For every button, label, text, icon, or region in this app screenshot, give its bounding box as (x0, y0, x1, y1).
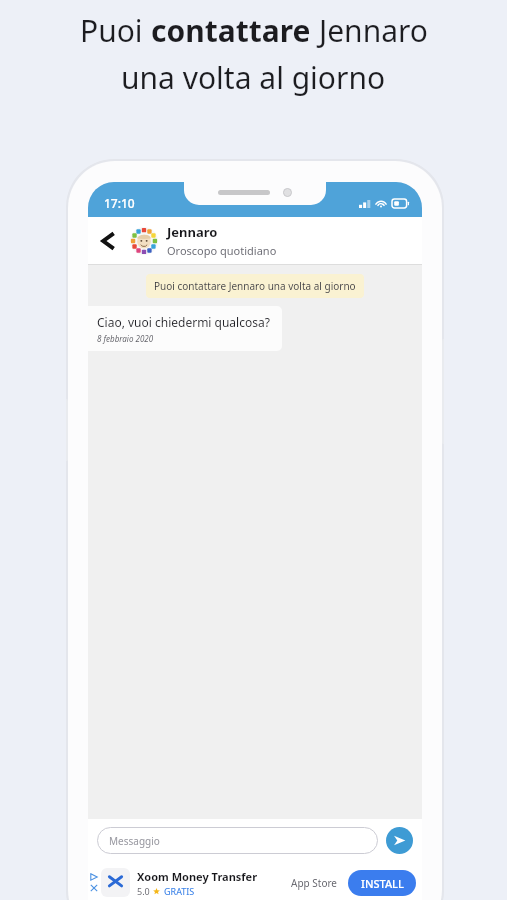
staticText: 8 febbraio 2020 (97, 333, 154, 344)
staticText: INSTALL (361, 876, 404, 891)
button[interactable]: Send (386, 827, 413, 854)
staticText: una volta al giorno (121, 57, 386, 98)
staticText: Puoi contattare Jennaro una volta al gio… (154, 279, 356, 293)
button[interactable]: Messaggio (97, 827, 378, 854)
button[interactable]: Jennaro (167, 217, 422, 264)
staticText: App Store (291, 876, 338, 890)
staticText: contattare (151, 10, 319, 51)
staticText: Puoi (80, 10, 151, 51)
button[interactable]: INSTALL (348, 870, 416, 896)
staticText: 5.0 (137, 885, 150, 897)
staticText: Jennaro (167, 223, 218, 241)
staticText: Oroscopo quotidiano (167, 243, 277, 258)
staticText: Jennaro (319, 10, 428, 51)
button[interactable]: Back (88, 217, 130, 264)
staticText: Ciao, vuoi chiedermi qualcosa? (97, 314, 270, 330)
staticText: GRATIS (164, 885, 195, 897)
staticText: 17:10 (104, 195, 135, 211)
staticText: Xoom Money Transfer (137, 869, 258, 884)
staticText: Messaggio (109, 834, 160, 848)
